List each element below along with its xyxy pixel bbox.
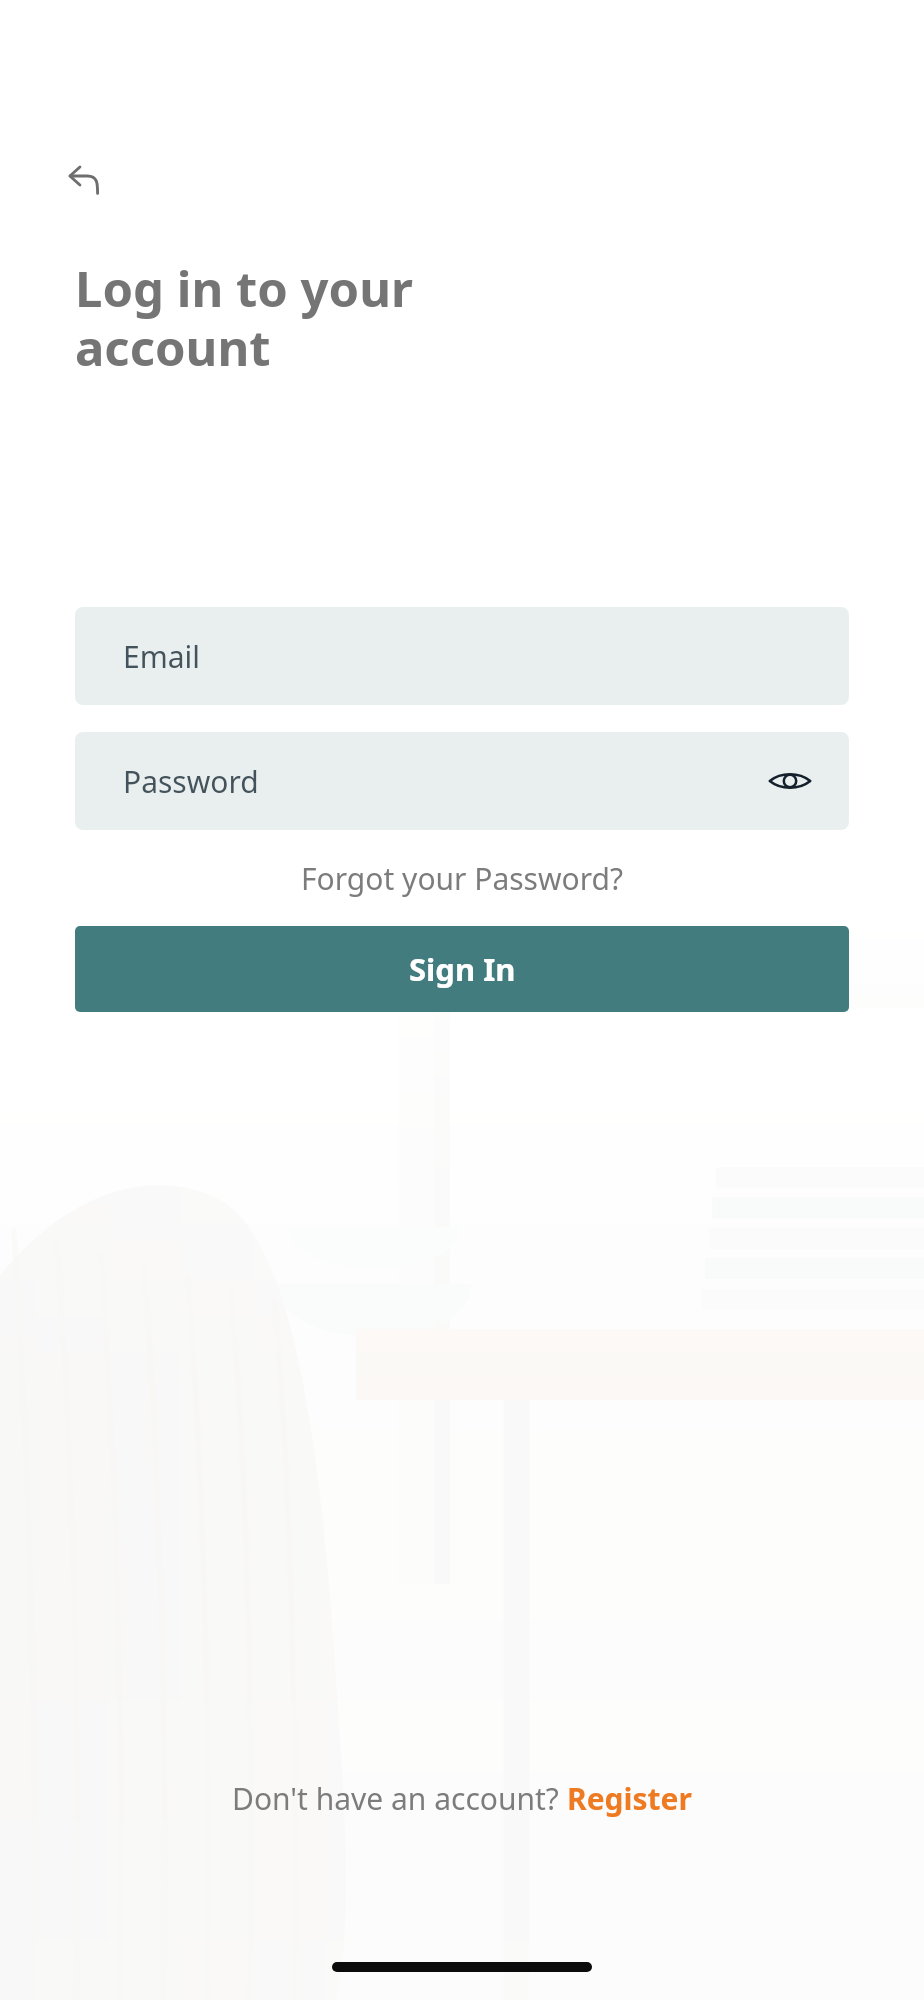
staticText: Log in to your account — [75, 255, 413, 381]
button[interactable]: Show password — [757, 748, 823, 814]
button[interactable]: Back — [60, 155, 108, 203]
staticText: Don't have an account? — [232, 1778, 567, 1819]
button[interactable]: Forgot your Password? — [0, 858, 924, 899]
button[interactable]: Email — [75, 607, 849, 705]
button[interactable]: Sign In — [75, 926, 849, 1012]
staticText: Forgot your Password? — [301, 858, 623, 899]
staticText: Password — [123, 761, 259, 802]
staticText: Email — [123, 636, 201, 677]
button[interactable]: Password — [75, 732, 849, 830]
staticText: Sign In — [409, 948, 516, 990]
button[interactable]: Don't have an account? — [232, 1778, 692, 1819]
staticText: Register — [567, 1778, 692, 1819]
